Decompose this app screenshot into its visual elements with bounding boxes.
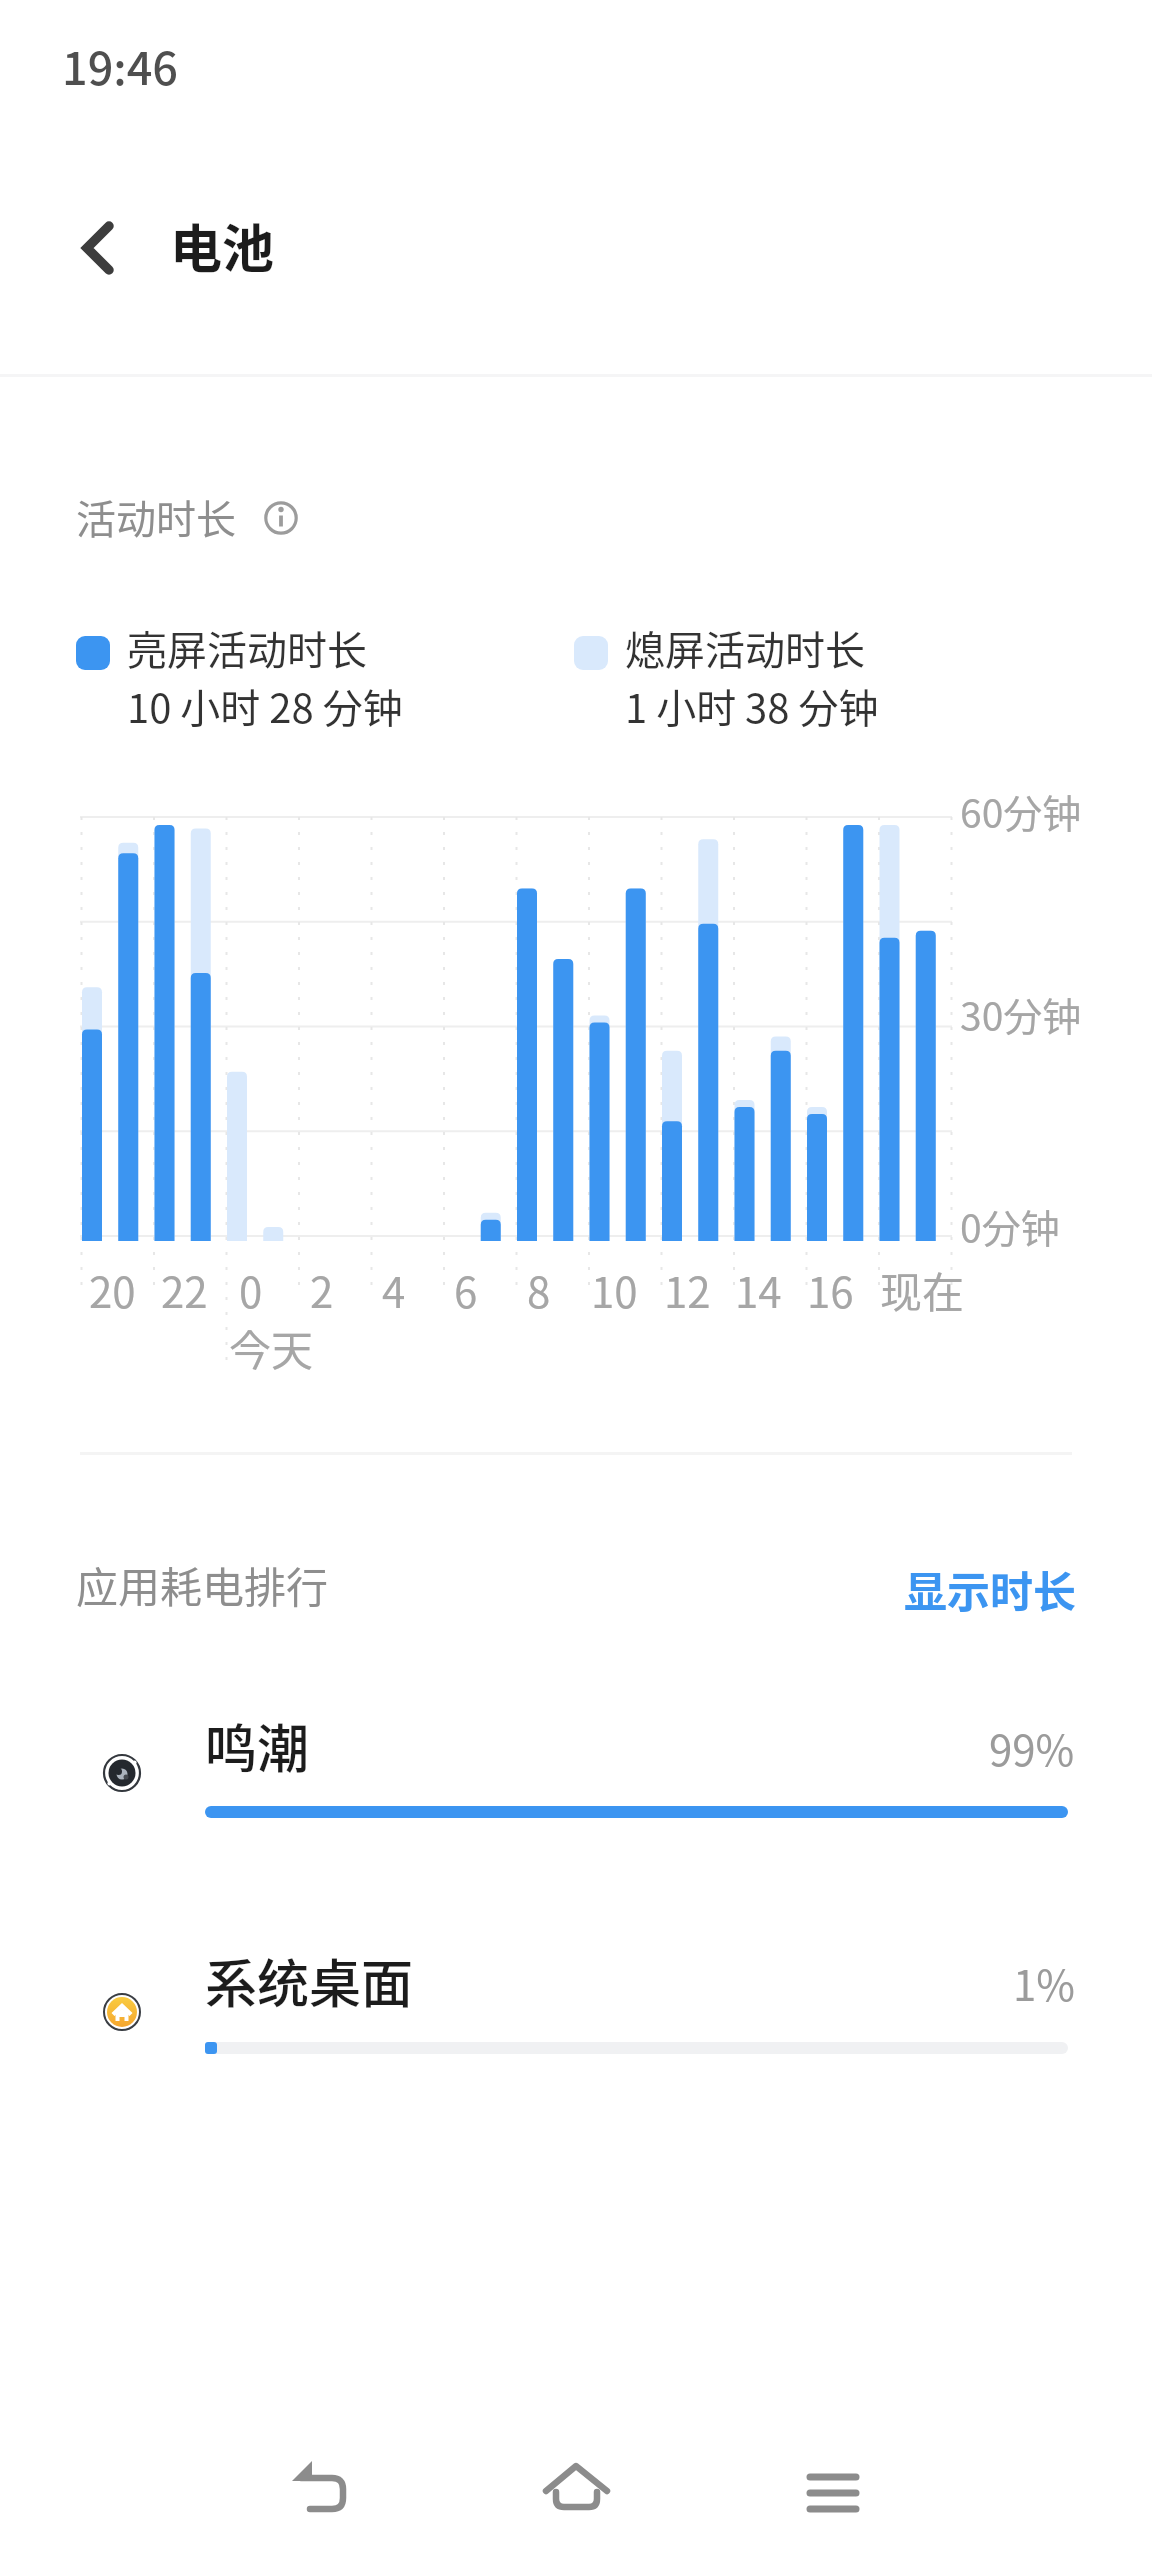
staticText: 0分钟: [960, 1198, 1060, 1254]
staticText: 20: [89, 1259, 136, 1320]
staticText: 亮屏活动时长: [127, 619, 367, 677]
button[interactable]: 鸣潮: [0, 1700, 1152, 1860]
staticText: 显示时长: [904, 1558, 1076, 1620]
staticText: 10: [591, 1259, 638, 1320]
button[interactable]: [524, 2437, 628, 2541]
button[interactable]: 系统桌面: [0, 1935, 1152, 2095]
staticText: 1 小时 38 分钟: [625, 677, 879, 735]
staticText: 电池: [170, 208, 275, 283]
staticText: 22: [161, 1259, 208, 1320]
staticText: 30分钟: [960, 986, 1082, 1042]
staticText: 16: [807, 1259, 854, 1320]
staticText: 6: [454, 1259, 478, 1320]
staticText: 10 小时 28 分钟: [127, 677, 403, 735]
staticText: 熄屏活动时长: [625, 619, 865, 677]
staticText: 14: [735, 1259, 782, 1320]
staticText: 4: [382, 1259, 406, 1320]
staticText: 1%: [1013, 1952, 1075, 2013]
staticText: 0: [239, 1259, 263, 1320]
button[interactable]: [261, 498, 301, 538]
staticText: 应用耗电排行: [76, 1554, 329, 1615]
staticText: 19:46: [62, 33, 179, 98]
button[interactable]: [64, 206, 148, 290]
staticText: 60分钟: [960, 783, 1082, 839]
button[interactable]: [780, 2437, 884, 2541]
staticText: 鸣潮: [205, 1708, 310, 1783]
staticText: 今天: [229, 1317, 314, 1378]
button[interactable]: [270, 2437, 374, 2541]
staticText: 12: [664, 1259, 711, 1320]
staticText: 99%: [989, 1717, 1075, 1778]
staticText: 活动时长: [76, 488, 236, 546]
button[interactable]: 显示时长: [0, 0, 320, 62]
staticText: 系统桌面: [205, 1943, 414, 2018]
staticText: 现在: [880, 1259, 965, 1320]
staticText: 8: [527, 1259, 551, 1320]
staticText: 2: [310, 1259, 334, 1320]
